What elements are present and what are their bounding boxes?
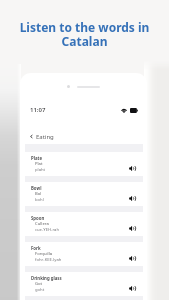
staticText: Bowl <box>31 185 42 191</box>
staticText: cue-YEH-rah <box>35 227 60 233</box>
staticText: Cullera <box>35 221 49 227</box>
button[interactable]: Eating <box>29 131 54 142</box>
button[interactable]: Play pronunciation <box>125 221 139 235</box>
button[interactable]: Spoon <box>25 212 143 236</box>
staticText: plaht <box>35 167 46 173</box>
staticText: Listen to the words in Catalan <box>17 19 152 50</box>
staticText: Plate <box>31 155 42 161</box>
staticText: fohr-KEE-lyah <box>35 257 62 263</box>
button[interactable]: Drinking glass <box>25 272 143 296</box>
button[interactable]: Play pronunciation <box>125 191 139 205</box>
staticText: Fork <box>31 245 41 251</box>
staticText: Spoon <box>31 215 45 221</box>
button[interactable]: Fork <box>25 242 143 266</box>
button[interactable]: Play pronunciation <box>125 281 139 295</box>
staticText: Got <box>35 281 43 287</box>
staticText: Plat <box>35 161 43 167</box>
button[interactable]: Bowl <box>25 182 143 206</box>
staticText: goht <box>35 287 45 293</box>
staticText: bohl <box>35 197 44 203</box>
staticText: Drinking glass <box>31 275 62 281</box>
staticText: Forquilla <box>35 251 53 257</box>
button[interactable]: Play pronunciation <box>125 161 139 175</box>
button[interactable]: Plate <box>25 152 143 176</box>
staticText: Eating <box>36 133 54 141</box>
staticText: 11:07 <box>30 106 46 114</box>
button[interactable]: Play pronunciation <box>125 251 139 265</box>
staticText: Bol <box>35 191 42 197</box>
